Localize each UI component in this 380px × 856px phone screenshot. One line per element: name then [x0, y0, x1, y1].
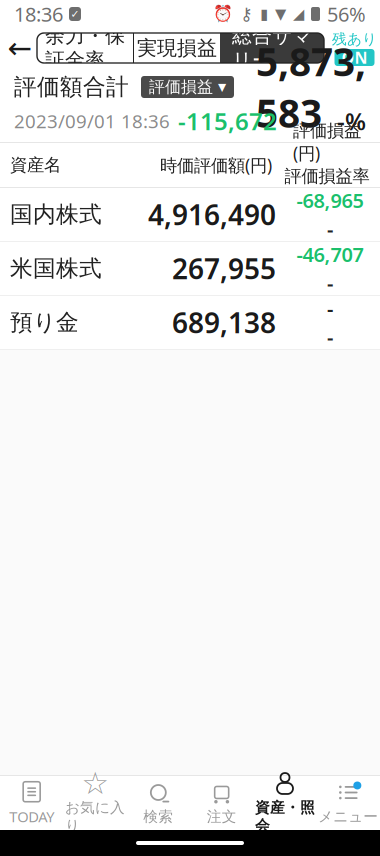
staticText: 資産名 [10, 154, 61, 176]
staticText: 米国株式 [10, 255, 102, 282]
button[interactable]: 総合サマリー [220, 33, 324, 63]
button[interactable]: 米国株式 [0, 242, 380, 296]
staticText: -% [337, 105, 366, 137]
staticText: 4,916,490 [148, 196, 276, 233]
staticText: -46,707 [296, 241, 363, 267]
staticText: - [327, 323, 333, 350]
staticText: ON [341, 47, 367, 68]
staticText: 689,138 [172, 304, 276, 341]
staticText: ◢ [293, 6, 304, 22]
button[interactable]: Back [3, 31, 37, 65]
button[interactable]: 検索 [127, 777, 190, 829]
staticText: 18:36 [14, 1, 63, 27]
button[interactable]: 預り金 [0, 296, 380, 350]
staticText: 56% [327, 1, 366, 27]
staticText: 評価損益率(%) [284, 165, 369, 210]
staticText: 総合サマリー [232, 23, 312, 72]
button[interactable]: 余力・保証金率 [37, 33, 133, 63]
button[interactable]: 注文 [190, 777, 253, 829]
staticText: - [327, 269, 333, 296]
staticText: 5,873,583 [256, 36, 366, 138]
staticText: お気に入り [65, 798, 125, 834]
staticText: ☆ [81, 766, 108, 801]
staticText: ⏰ [213, 5, 233, 23]
staticText: 預り金 [10, 309, 79, 336]
staticText: 資産・照会 [255, 798, 315, 834]
staticText: TODAY [9, 807, 54, 826]
staticText: 評価損益 [149, 77, 213, 97]
button[interactable]: ☆ [63, 777, 127, 829]
staticText: 検索 [143, 807, 173, 825]
staticText: 評価額合計 [14, 73, 129, 101]
staticText: -115,672 [178, 105, 277, 137]
button[interactable]: 残あり [332, 30, 377, 66]
staticText: ▮ [260, 6, 268, 22]
staticText: ⚷ [240, 4, 253, 24]
staticText: 実現損益 [137, 36, 217, 60]
staticText: 時価評価額(円) [160, 153, 272, 176]
button[interactable]: TODAY [0, 777, 63, 829]
staticText: 注文 [207, 807, 237, 825]
button[interactable]: 資産・照会 [253, 777, 317, 829]
staticText: メニュー [318, 807, 378, 825]
staticText: ✓ [70, 8, 79, 20]
staticText: 余力・保証金率 [45, 23, 125, 72]
button[interactable]: 実現損益 [134, 33, 220, 63]
staticText: ▼ [275, 6, 286, 22]
button[interactable]: 評価損益 [141, 76, 234, 98]
staticText: -68,965 [296, 187, 363, 213]
staticText: 2023/09/01 18:36 [14, 109, 170, 133]
staticText: 267,955 [172, 250, 276, 287]
button[interactable]: 国内株式 [0, 188, 380, 242]
staticText: ▼ [218, 81, 226, 93]
staticText: 評価損益(円) [293, 120, 361, 164]
staticText: 国内株式 [10, 201, 102, 228]
staticText: - [327, 215, 333, 242]
staticText: ← [7, 31, 32, 65]
staticText: - [327, 295, 333, 321]
staticText: 残あり [332, 30, 377, 48]
button[interactable]: メニュー [317, 777, 380, 829]
